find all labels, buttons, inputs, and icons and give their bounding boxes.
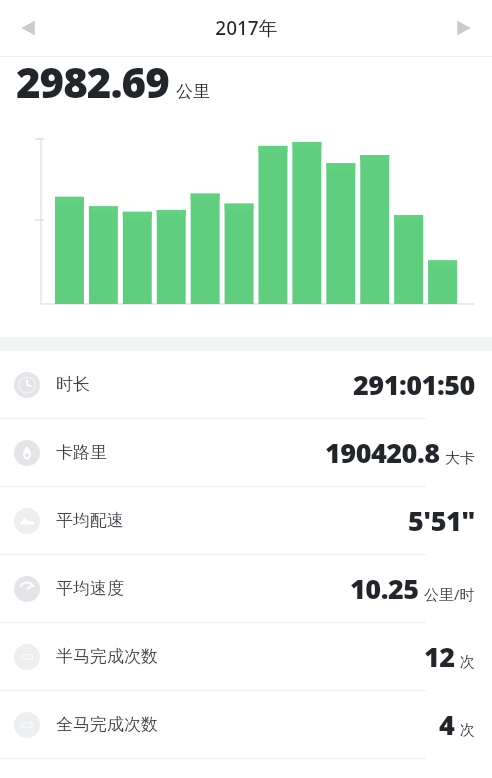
staticText: 次 [460, 721, 475, 740]
staticText: 全马完成次数 [56, 714, 158, 735]
staticText: 2982.69 [16, 53, 169, 108]
staticText: 10.25 [350, 570, 419, 607]
staticText: 平均速度 [56, 578, 124, 599]
staticText: 公里 [176, 81, 210, 102]
button[interactable]: Next year [442, 6, 486, 50]
staticText: 291:01:50 [353, 366, 475, 403]
staticText: 190420.8 [325, 434, 440, 471]
button[interactable]: 全马完成次数 [0, 691, 492, 758]
button[interactable]: 卡路里 [0, 419, 492, 486]
staticText: 半马完成次数 [56, 646, 158, 667]
staticText: 2017年 [215, 15, 278, 41]
staticText: 12 [424, 638, 455, 675]
staticText: 时长 [56, 374, 90, 395]
staticText: 次 [460, 653, 475, 672]
button[interactable]: Previous year [6, 6, 50, 50]
button[interactable]: 平均速度 [0, 555, 492, 622]
button[interactable]: 平均配速 [0, 487, 492, 554]
staticText: 4 [439, 706, 455, 743]
staticText: 平均配速 [56, 510, 124, 531]
staticText: 5'51" [408, 502, 475, 539]
staticText: 公里/时 [424, 584, 475, 604]
button[interactable]: 时长 [0, 351, 492, 418]
staticText: 卡路里 [56, 442, 107, 463]
staticText: 大卡 [445, 449, 475, 468]
button[interactable]: 半马完成次数 [0, 623, 492, 690]
